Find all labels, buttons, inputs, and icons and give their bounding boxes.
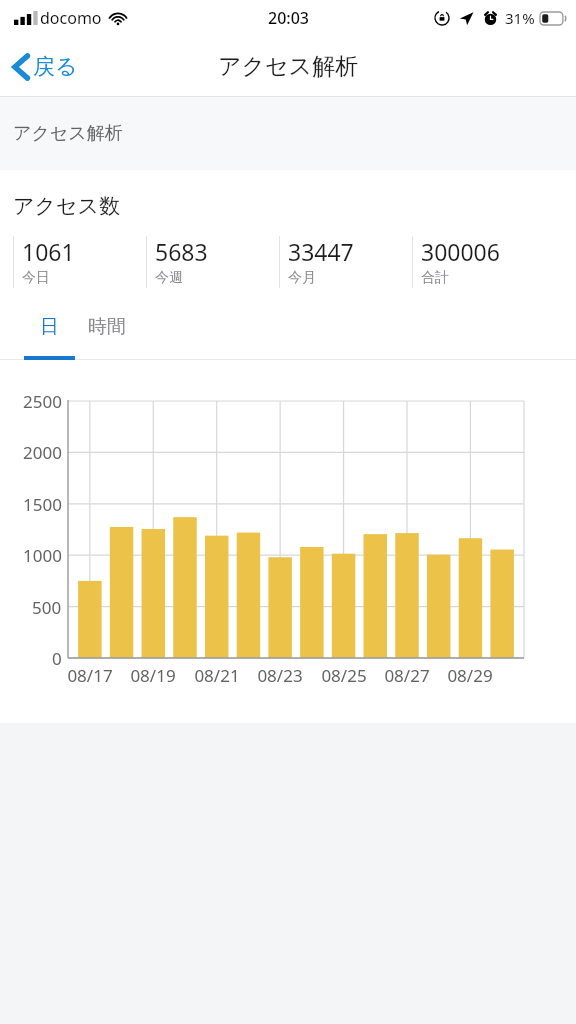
button[interactable]: 戻る bbox=[0, 36, 92, 97]
staticText: 33447 bbox=[288, 236, 354, 267]
staticText: 20:03 bbox=[268, 7, 309, 29]
staticText: 2500 bbox=[23, 390, 62, 413]
staticText: 300006 bbox=[421, 236, 500, 267]
staticText: 08/23 bbox=[257, 664, 303, 687]
staticText: 合計 bbox=[421, 269, 449, 287]
staticText: 1000 bbox=[23, 544, 62, 567]
staticText: 今月 bbox=[288, 269, 316, 287]
staticText: 08/17 bbox=[67, 664, 113, 687]
staticText: 5683 bbox=[155, 236, 208, 267]
staticText: 日 bbox=[40, 315, 59, 339]
staticText: 1061 bbox=[22, 236, 75, 267]
button[interactable]: 時間 bbox=[81, 315, 132, 360]
staticText: アクセス解析 bbox=[13, 122, 123, 145]
staticText: docomo bbox=[40, 7, 102, 29]
staticText: 戻る bbox=[33, 53, 78, 81]
staticText: 今週 bbox=[155, 269, 183, 287]
staticText: 08/29 bbox=[447, 664, 493, 687]
staticText: 08/25 bbox=[321, 664, 367, 687]
staticText: 2000 bbox=[23, 441, 62, 464]
staticText: 500 bbox=[32, 596, 62, 619]
staticText: 31% bbox=[505, 8, 535, 28]
staticText: 08/19 bbox=[130, 664, 176, 687]
staticText: 08/21 bbox=[194, 664, 240, 687]
staticText: 1500 bbox=[23, 493, 62, 516]
staticText: 08/27 bbox=[384, 664, 430, 687]
button[interactable]: 日 bbox=[24, 315, 75, 360]
staticText: アクセス数 bbox=[13, 193, 120, 219]
staticText: 今日 bbox=[22, 269, 50, 287]
staticText: 時間 bbox=[88, 315, 126, 339]
staticText: 0 bbox=[52, 647, 62, 670]
staticText: アクセス解析 bbox=[218, 52, 359, 81]
